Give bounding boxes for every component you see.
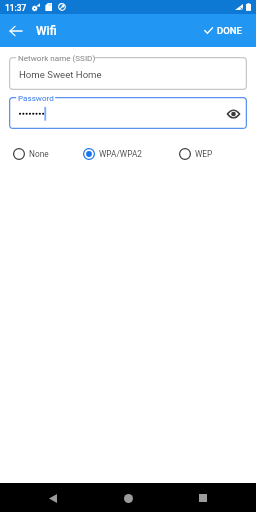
button[interactable]: Network name (SSID): [9, 57, 247, 90]
staticText: WPA/WPA2: [99, 149, 142, 159]
staticText: None: [29, 149, 49, 159]
button[interactable]: Show password: [224, 105, 242, 123]
button[interactable]: Home: [117, 487, 139, 509]
staticText: Wifi: [36, 24, 57, 38]
button[interactable]: Back: [4, 19, 28, 43]
staticText: WEP: [195, 149, 213, 159]
staticText: DONE: [217, 25, 242, 36]
button[interactable]: Back: [42, 487, 64, 509]
staticText: 11:37: [5, 3, 27, 13]
button[interactable]: None: [12, 147, 49, 161]
staticText: Home Sweet Home: [19, 69, 102, 80]
staticText: Network name (SSID): [18, 53, 96, 62]
button[interactable]: WPA/WPA2: [82, 147, 142, 161]
staticText: Password: [18, 93, 54, 102]
button[interactable]: WEP: [178, 147, 213, 161]
button[interactable]: DONE: [204, 25, 242, 36]
button[interactable]: Recent apps: [192, 487, 214, 509]
button[interactable]: Password: [9, 97, 247, 129]
